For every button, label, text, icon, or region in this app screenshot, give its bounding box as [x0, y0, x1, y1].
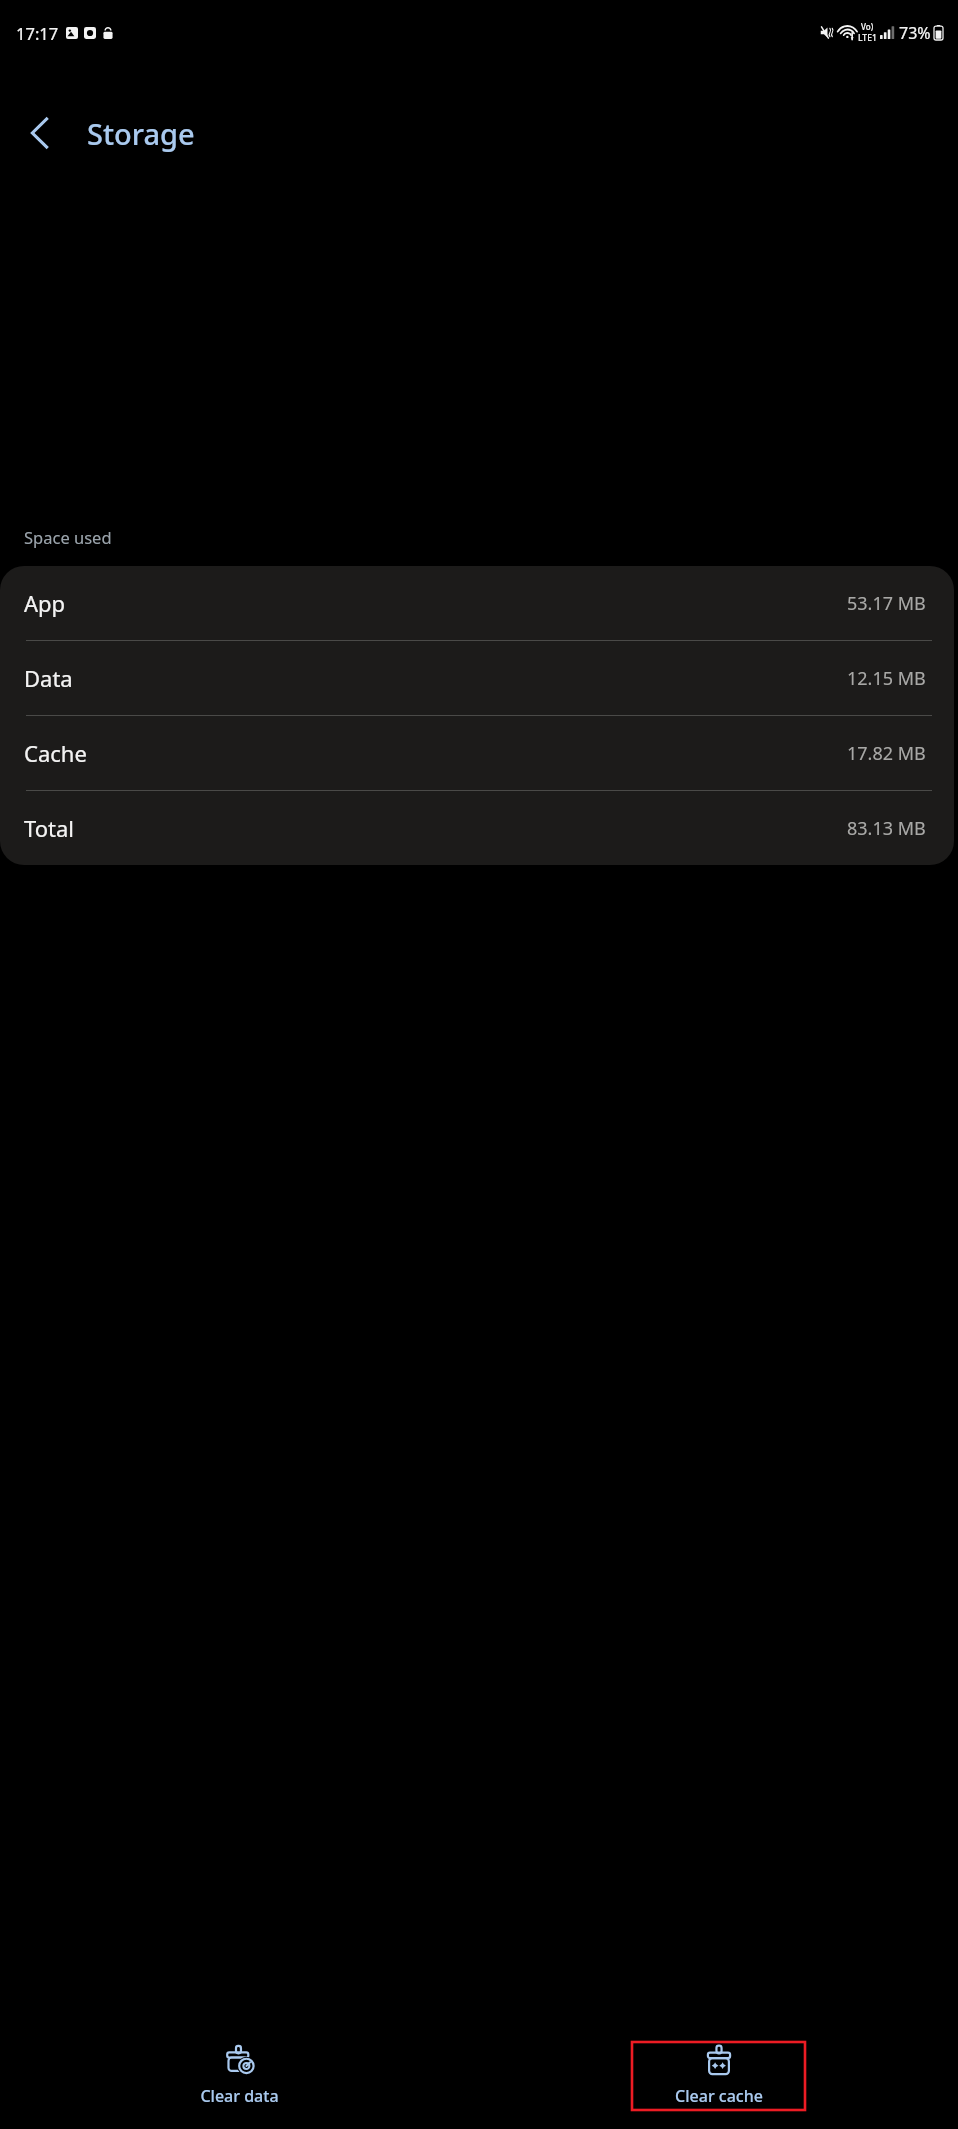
staticText: App [24, 588, 66, 618]
staticText: Space used [24, 526, 112, 548]
other: Clear data [224, 2045, 256, 2077]
staticText: Clear data [200, 2085, 279, 2107]
button[interactable]: Clear cache [632, 2042, 805, 2110]
staticText: Data [24, 663, 73, 693]
staticText: Total [24, 813, 74, 843]
staticText: 12.15 MB [847, 666, 926, 691]
staticText: Cache [24, 738, 87, 768]
staticText: Vo) [861, 21, 874, 32]
button[interactable]: Total [0, 791, 954, 865]
staticText: LTE1 [858, 32, 877, 44]
staticText: Clear cache [675, 2085, 763, 2107]
button[interactable]: Clear data [153, 2042, 326, 2110]
other: Clear cache [704, 2045, 734, 2077]
button[interactable]: Cache [0, 716, 954, 790]
staticText: 53.17 MB [847, 591, 926, 616]
staticText: 73% [899, 22, 931, 44]
button[interactable]: Data [0, 641, 954, 715]
button[interactable]: Navigate up [11, 105, 67, 161]
staticText: 83.13 MB [847, 816, 926, 841]
staticText: 17:17 [16, 22, 59, 44]
button[interactable]: App [0, 566, 954, 640]
staticText: 17.82 MB [847, 741, 926, 766]
staticText: Storage [87, 114, 195, 153]
